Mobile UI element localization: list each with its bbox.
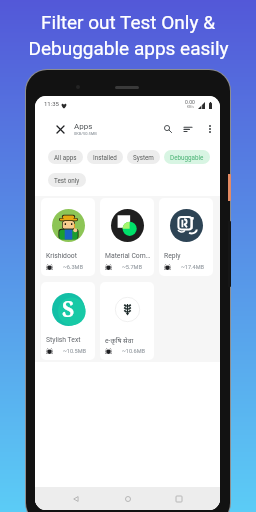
button[interactable]: Sort xyxy=(182,117,194,141)
button[interactable]: More options xyxy=(204,117,214,141)
button[interactable]: Close xyxy=(41,117,214,141)
button[interactable]: Search xyxy=(162,117,174,141)
button[interactable]: Krishidoot xyxy=(41,198,95,276)
staticText: Material Com... xyxy=(105,252,151,260)
staticText: Stylish Text xyxy=(46,336,92,344)
button[interactable]: Home xyxy=(118,489,138,509)
staticText: Reply xyxy=(164,252,210,260)
button[interactable]: Debuggable xyxy=(164,150,210,164)
staticText: KB/s xyxy=(187,105,194,109)
button[interactable]: Recents xyxy=(169,489,189,509)
staticText: S xyxy=(62,295,75,324)
button[interactable]: Installed xyxy=(87,150,123,164)
staticText: ~5.7MB xyxy=(122,264,142,271)
staticText: System xyxy=(133,154,154,161)
button[interactable]: S xyxy=(41,282,95,360)
button[interactable]: All apps xyxy=(48,150,83,164)
staticText: ~10.5MB xyxy=(63,348,87,355)
staticText: Test only xyxy=(54,177,80,184)
staticText: 0KB/50.5MB xyxy=(74,131,97,136)
staticText: e-कृषि सेवा xyxy=(105,336,151,345)
button[interactable]: Material Com... xyxy=(100,198,154,276)
staticText: Krishidoot xyxy=(46,252,92,260)
button[interactable]: e-कृषि सेवा xyxy=(100,282,154,360)
staticText: Debuggable xyxy=(170,154,204,161)
staticText: Apps xyxy=(74,122,93,131)
staticText: Filter out Test Only & xyxy=(41,11,215,33)
staticText: Installed xyxy=(93,154,117,161)
staticText: 0.00 xyxy=(185,99,195,105)
button[interactable]: Reply xyxy=(159,198,213,276)
button[interactable]: Test only xyxy=(48,173,86,187)
staticText: 11:35 xyxy=(44,100,59,107)
staticText: Debuggable apps easily xyxy=(28,37,229,59)
button[interactable]: Back xyxy=(66,489,86,509)
staticText: ~10.6MB xyxy=(122,348,146,355)
staticText: All apps xyxy=(54,154,77,161)
button[interactable]: System xyxy=(127,150,160,164)
button[interactable]: Close xyxy=(48,117,72,141)
staticText: ~17.4MB xyxy=(181,264,205,271)
staticText: ~6.3MB xyxy=(63,264,83,271)
